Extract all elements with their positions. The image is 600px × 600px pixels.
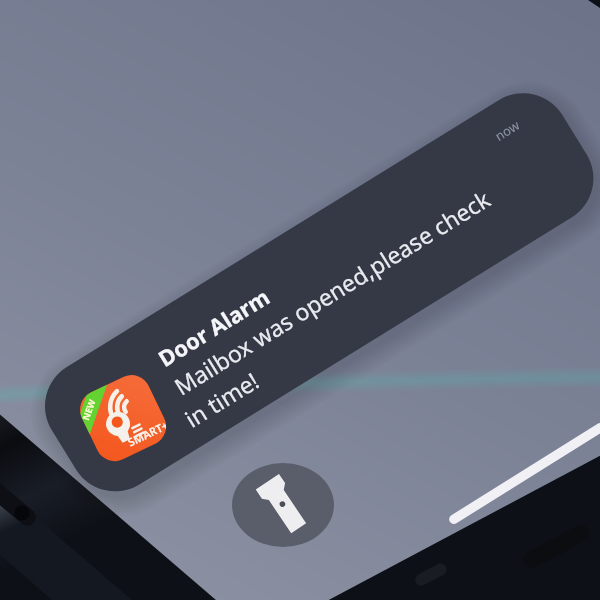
button[interactable] [0, 0, 600, 600]
other: Phone showing a Door Alarm notification [0, 0, 600, 600]
